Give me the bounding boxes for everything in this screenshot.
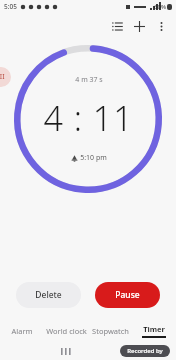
- staticText: 4 m 37 s: [75, 75, 103, 85]
- staticText: III: [0, 72, 5, 82]
- button[interactable]: Recent apps: [55, 343, 71, 359]
- staticText: World clock: [46, 326, 87, 336]
- staticText: 5:10 pm: [80, 153, 107, 163]
- staticText: Timer: [143, 324, 165, 334]
- staticText: Alarm: [11, 326, 33, 336]
- button[interactable]: Delete: [16, 282, 81, 308]
- staticText: 60%: [154, 3, 166, 11]
- button[interactable]: Stopwatch: [88, 320, 132, 342]
- staticText: 5:05: [4, 2, 17, 11]
- button[interactable]: Timer: [132, 320, 176, 342]
- button[interactable]: World clock: [44, 320, 88, 342]
- staticText: Pause: [115, 289, 140, 301]
- button[interactable]: Preset timers: [106, 15, 128, 37]
- button[interactable]: Pause: [95, 282, 160, 308]
- staticText: Delete: [35, 289, 62, 301]
- staticText: Stopwatch: [92, 326, 129, 336]
- staticText: 4 : 11: [43, 95, 134, 141]
- button[interactable]: More options: [150, 15, 172, 37]
- button[interactable]: Alarm: [0, 320, 44, 342]
- staticText: Recorded by: [126, 347, 164, 355]
- button[interactable]: Add timer: [128, 15, 150, 37]
